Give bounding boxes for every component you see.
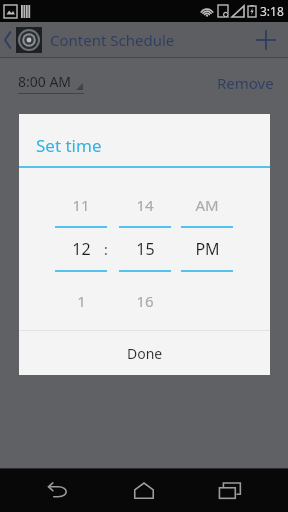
staticText: 1 <box>77 291 86 311</box>
button[interactable]: 15 <box>119 238 171 260</box>
staticText: 8:00 AM <box>18 72 72 91</box>
button[interactable]: Home <box>117 468 171 512</box>
button[interactable]: 16 <box>119 290 171 312</box>
button[interactable]: 12 <box>55 238 107 260</box>
button[interactable]: Done <box>19 331 270 375</box>
button[interactable]: Recent apps <box>203 468 257 512</box>
button[interactable]: Add <box>244 22 288 58</box>
staticText: 15 <box>136 238 155 260</box>
button[interactable]: 11 <box>55 194 107 216</box>
staticText: 11 <box>72 195 90 215</box>
staticText: Remove <box>217 73 274 93</box>
staticText: 12 <box>72 238 91 260</box>
staticText: 14 <box>136 195 154 215</box>
button[interactable]: Back <box>32 468 86 512</box>
staticText: : <box>104 240 108 259</box>
button[interactable]: PM <box>181 238 233 260</box>
staticText: Done <box>127 344 163 363</box>
button[interactable]: 14 <box>119 194 171 216</box>
button[interactable]: Navigate up <box>0 22 181 58</box>
staticText: Set time <box>36 134 102 157</box>
button[interactable]: AM <box>181 194 233 216</box>
staticText: 3:18 <box>260 3 284 19</box>
staticText: 16 <box>136 291 154 311</box>
button[interactable]: 8:00 AM <box>18 72 84 94</box>
button[interactable]: Remove <box>203 58 288 108</box>
staticText: PM <box>195 238 220 260</box>
staticText: AM <box>195 195 219 215</box>
button[interactable]: : <box>99 238 113 260</box>
button[interactable]: 1 <box>55 290 107 312</box>
staticText: Content Schedule <box>50 30 175 50</box>
